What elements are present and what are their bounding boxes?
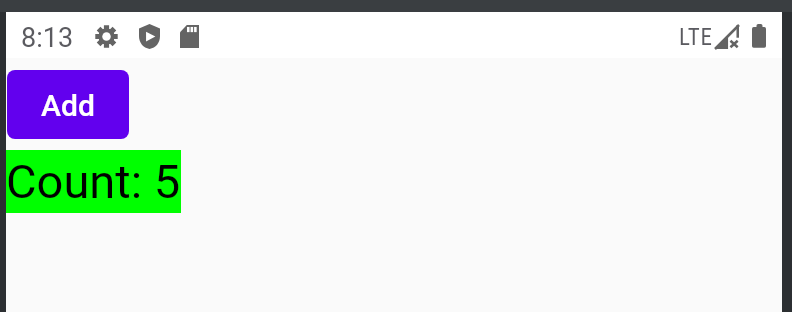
other: Play Protect [139, 24, 160, 49]
staticText: 8:13 [21, 22, 74, 54]
button[interactable]: Add [7, 70, 129, 139]
staticText: Count: 5 [6, 154, 181, 209]
other: No signal, no data [715, 25, 739, 49]
staticText: Add [41, 88, 95, 123]
other: SD card [180, 25, 199, 48]
other: Settings [95, 25, 118, 48]
staticText: LTE [679, 24, 713, 51]
other: Battery [752, 24, 766, 48]
